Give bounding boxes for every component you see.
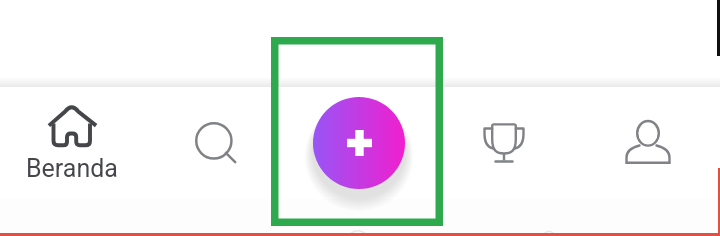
- button[interactable]: Search: [144, 87, 288, 233]
- button[interactable]: Beranda: [0, 87, 144, 233]
- button[interactable]: Add: [313, 97, 405, 189]
- button[interactable]: Leaderboard: [432, 87, 576, 233]
- button[interactable]: Profile: [576, 87, 720, 233]
- staticText: Beranda: [26, 154, 118, 183]
